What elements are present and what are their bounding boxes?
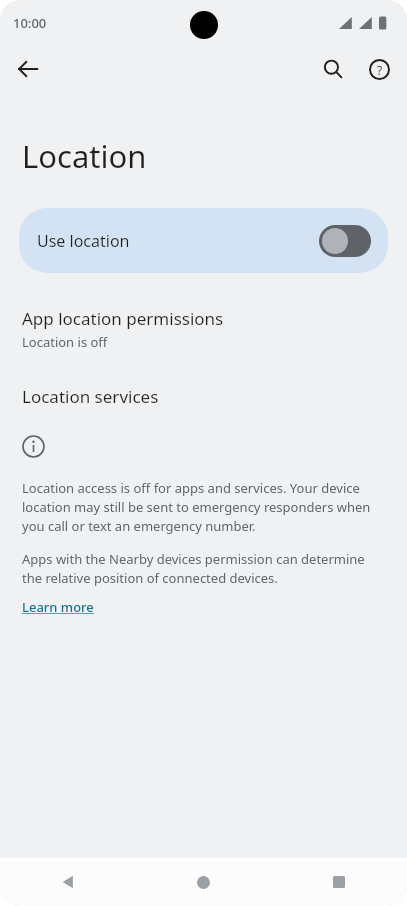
button[interactable]: Back xyxy=(0,858,135,906)
staticText: Location is off xyxy=(22,333,108,351)
button[interactable]: Help xyxy=(359,49,399,89)
button[interactable]: App location permissions xyxy=(0,305,407,353)
button[interactable]: Learn more xyxy=(22,598,94,616)
staticText: 10:00 xyxy=(13,14,47,32)
staticText: Location access is off for apps and serv… xyxy=(22,479,385,535)
button[interactable]: Search xyxy=(313,49,353,89)
button[interactable]: Back xyxy=(8,49,48,89)
staticText: Location services xyxy=(22,385,159,408)
button[interactable]: Use location xyxy=(19,208,388,273)
staticText: Learn more xyxy=(22,598,94,616)
button[interactable]: Recent apps xyxy=(271,858,407,906)
staticText: ? xyxy=(377,62,383,78)
button[interactable]: Location services xyxy=(0,383,407,410)
staticText: Location xyxy=(22,135,147,177)
staticText: Apps with the Nearby devices permission … xyxy=(22,550,385,587)
staticText: App location permissions xyxy=(22,307,224,330)
button[interactable]: Home xyxy=(135,858,271,906)
staticText: Use location xyxy=(37,230,130,252)
